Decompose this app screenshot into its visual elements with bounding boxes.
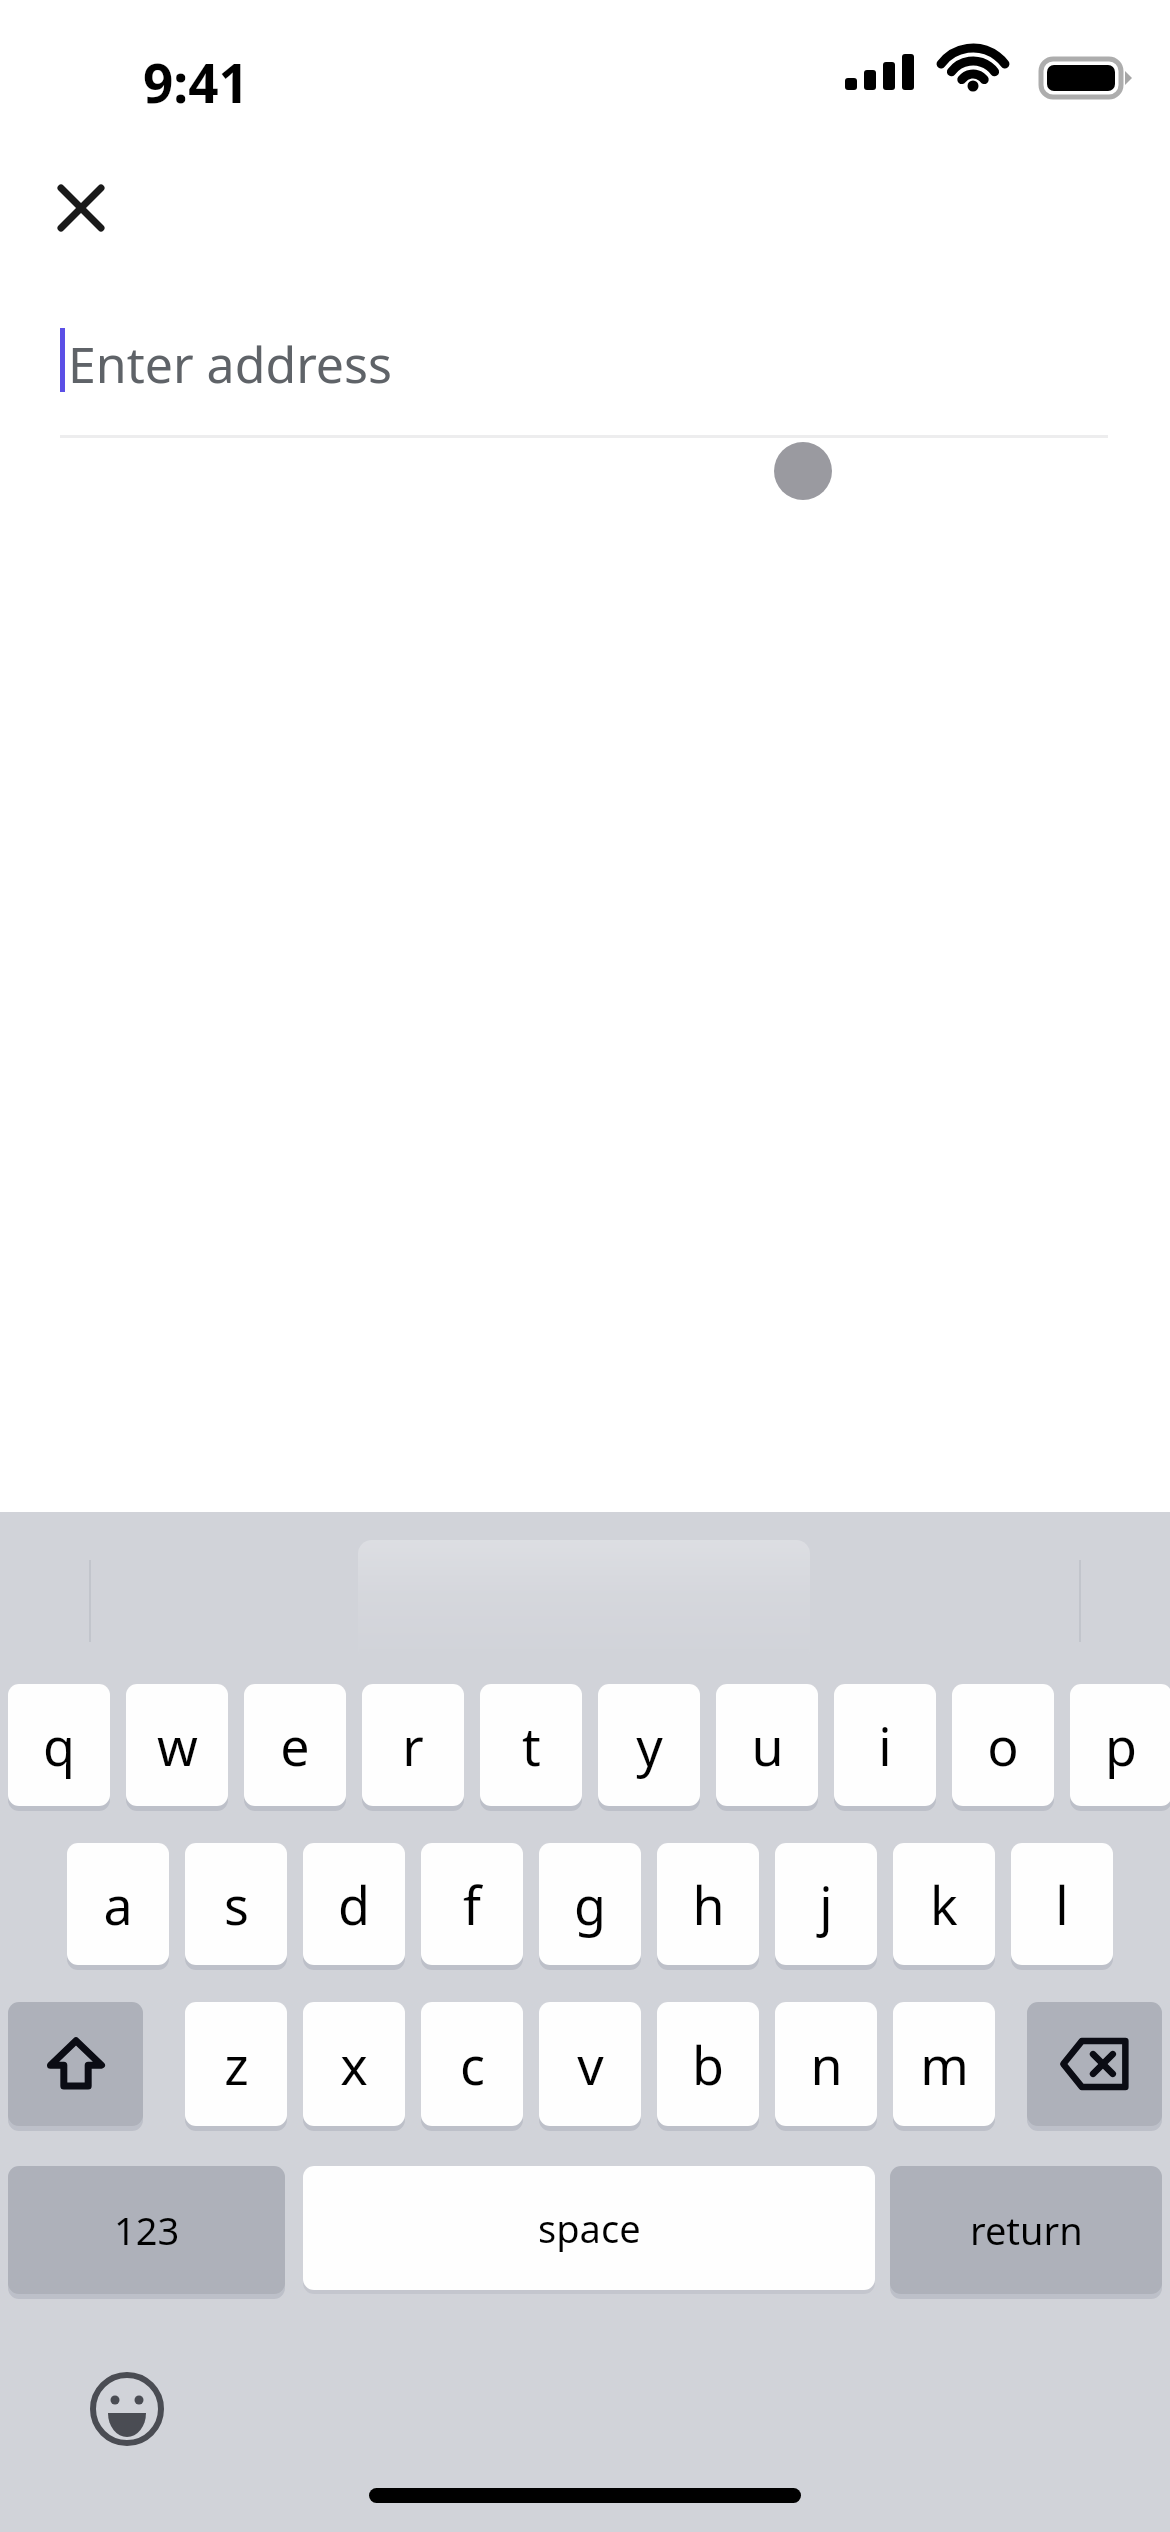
staticText: c bbox=[460, 2029, 485, 2100]
staticText: m bbox=[920, 2029, 969, 2100]
staticText: r bbox=[402, 1710, 424, 1781]
staticText: f bbox=[463, 1869, 481, 1940]
button[interactable]: l bbox=[1011, 1843, 1113, 1965]
button[interactable]: w bbox=[126, 1684, 228, 1806]
staticText: p bbox=[1105, 1710, 1137, 1781]
button[interactable]: p bbox=[1070, 1684, 1170, 1806]
button[interactable]: u bbox=[716, 1684, 818, 1806]
staticText: h bbox=[692, 1869, 725, 1940]
staticText: t bbox=[522, 1710, 541, 1781]
staticText: space bbox=[538, 2202, 641, 2254]
staticText: a bbox=[103, 1869, 133, 1940]
staticText: x bbox=[340, 2029, 368, 2100]
button[interactable]: r bbox=[362, 1684, 464, 1806]
button[interactable]: d bbox=[303, 1843, 405, 1965]
staticText: l bbox=[1055, 1869, 1069, 1940]
staticText: n bbox=[810, 2029, 843, 2100]
button[interactable]: x bbox=[303, 2002, 405, 2126]
staticText: w bbox=[157, 1710, 198, 1781]
button[interactable]: n bbox=[775, 2002, 877, 2126]
button[interactable]: z bbox=[185, 2002, 287, 2126]
staticText: u bbox=[751, 1710, 784, 1781]
button[interactable]: Emoji keyboard bbox=[68, 2350, 186, 2468]
button[interactable]: e bbox=[244, 1684, 346, 1806]
staticText: b bbox=[692, 2029, 724, 2100]
button[interactable]: m bbox=[893, 2002, 995, 2126]
staticText: i bbox=[878, 1710, 892, 1781]
staticText: o bbox=[987, 1710, 1019, 1781]
staticText: z bbox=[224, 2029, 249, 2100]
button[interactable]: b bbox=[657, 2002, 759, 2126]
button[interactable]: Shift bbox=[8, 2002, 143, 2126]
button[interactable]: j bbox=[775, 1843, 877, 1965]
staticText: q bbox=[43, 1710, 75, 1781]
button[interactable]: Enter address bbox=[60, 300, 1108, 430]
button[interactable]: q bbox=[8, 1684, 110, 1806]
button[interactable]: a bbox=[67, 1843, 169, 1965]
button[interactable]: o bbox=[952, 1684, 1054, 1806]
staticText: j bbox=[819, 1869, 833, 1940]
staticText: k bbox=[930, 1869, 958, 1940]
staticText: g bbox=[574, 1869, 606, 1940]
staticText: e bbox=[280, 1710, 310, 1781]
button[interactable]: s bbox=[185, 1843, 287, 1965]
button[interactable]: i bbox=[834, 1684, 936, 1806]
button[interactable]: t bbox=[480, 1684, 582, 1806]
staticText: s bbox=[224, 1869, 249, 1940]
button[interactable]: k bbox=[893, 1843, 995, 1965]
button[interactable]: f bbox=[421, 1843, 523, 1965]
button[interactable]: space bbox=[303, 2166, 875, 2290]
staticText: 123 bbox=[114, 2204, 180, 2256]
button[interactable]: Backspace bbox=[1027, 2002, 1162, 2126]
button[interactable]: g bbox=[539, 1843, 641, 1965]
staticText: return bbox=[970, 2204, 1083, 2256]
button[interactable]: return bbox=[890, 2166, 1162, 2294]
button[interactable]: c bbox=[421, 2002, 523, 2126]
staticText: y bbox=[636, 1710, 663, 1781]
staticText: Enter address bbox=[68, 330, 392, 398]
button[interactable]: 123 bbox=[8, 2166, 285, 2294]
button[interactable]: h bbox=[657, 1843, 759, 1965]
staticText: d bbox=[338, 1869, 370, 1940]
staticText: v bbox=[577, 2029, 604, 2100]
button[interactable]: y bbox=[598, 1684, 700, 1806]
button[interactable]: Close bbox=[31, 158, 131, 258]
staticText: 9:41 bbox=[143, 46, 249, 118]
button[interactable]: v bbox=[539, 2002, 641, 2126]
